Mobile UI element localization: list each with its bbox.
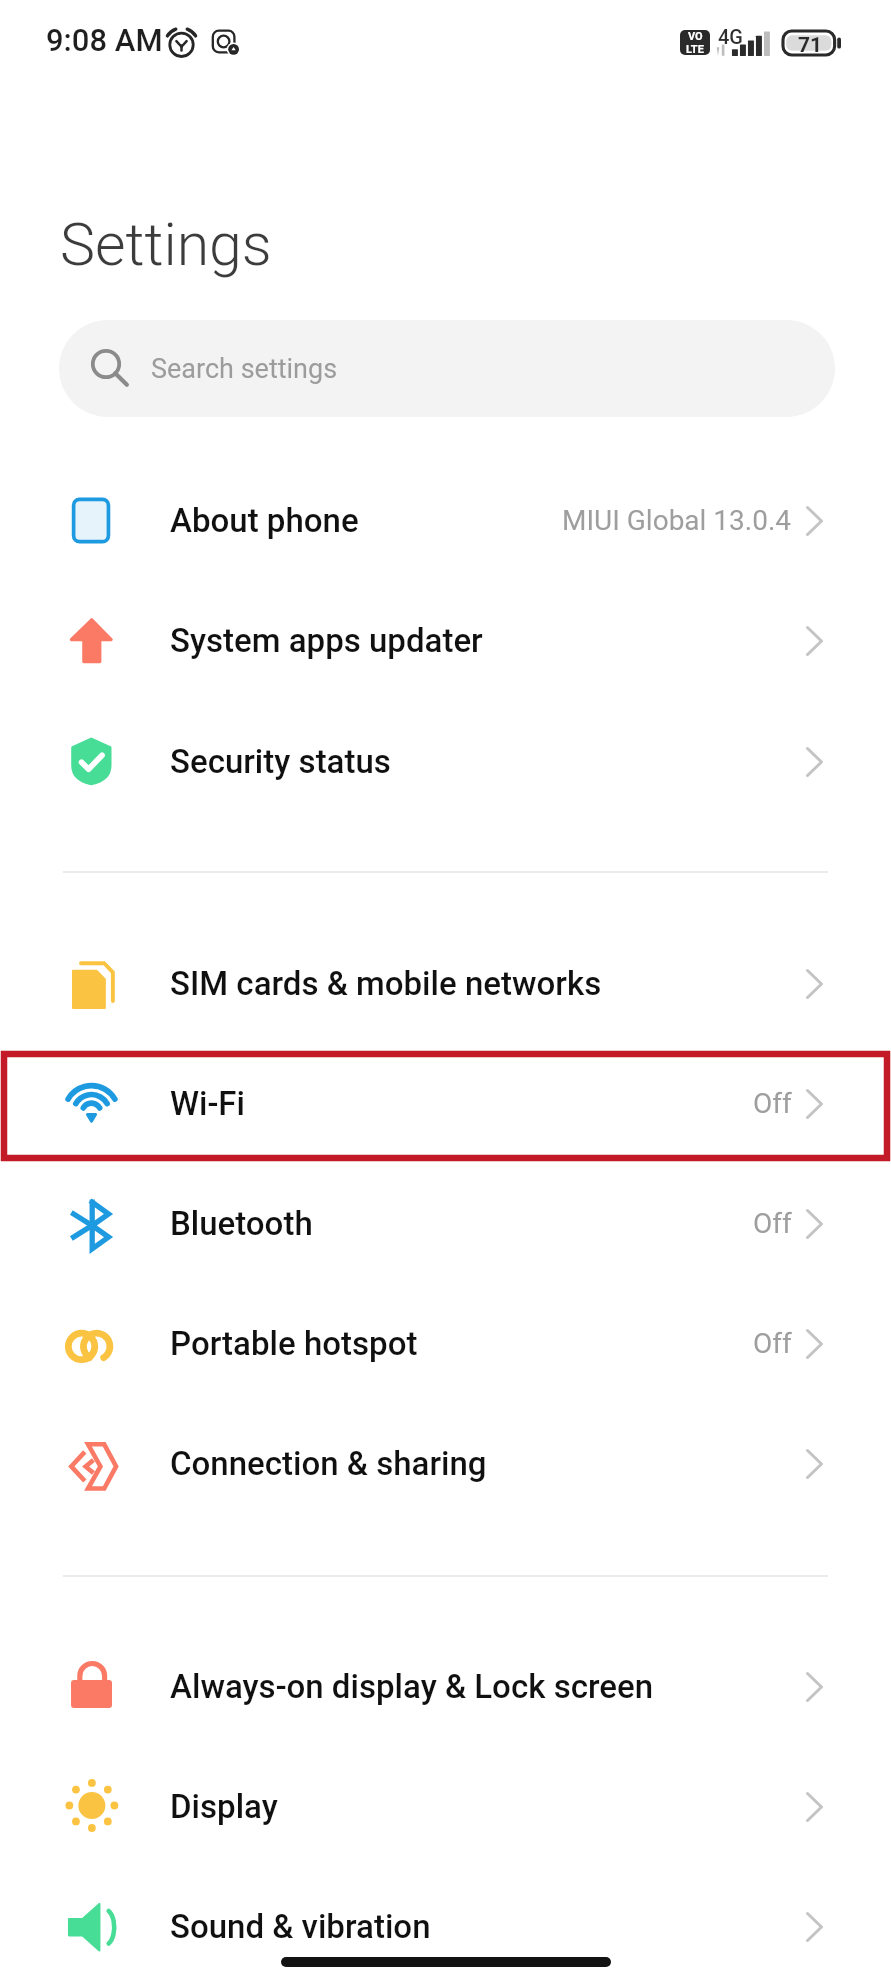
button[interactable]: SIM cards & mobile networks — [0, 924, 891, 1043]
button[interactable]: Connection & sharing — [0, 1404, 891, 1523]
staticText: Sound & vibration — [170, 1907, 431, 1946]
staticText: About phone — [170, 501, 359, 540]
staticText: Off — [753, 1327, 792, 1360]
button[interactable]: Always-on display & Lock screen — [0, 1627, 891, 1746]
staticText: Always-on display & Lock screen — [170, 1667, 654, 1706]
staticText: Search settings — [151, 353, 338, 385]
staticText: 71 — [798, 33, 823, 58]
button[interactable]: Bluetooth — [0, 1164, 891, 1283]
button[interactable]: Security status — [0, 702, 891, 821]
staticText: System apps updater — [170, 621, 483, 660]
button[interactable]: Search settings — [59, 320, 835, 417]
staticText: Portable hotspot — [170, 1324, 418, 1363]
staticText: LTE — [686, 43, 704, 55]
staticText: Connection & sharing — [170, 1444, 487, 1483]
staticText: Settings — [60, 210, 272, 279]
staticText: 9:08 AM — [46, 22, 163, 58]
staticText: 4G — [718, 25, 743, 48]
button[interactable]: Wi-Fi — [0, 1044, 891, 1163]
staticText: Display — [170, 1787, 278, 1826]
staticText: Wi-Fi — [170, 1084, 245, 1123]
staticText: MIUI Global 13.0.4 — [562, 504, 792, 537]
button[interactable]: Sound & vibration — [0, 1867, 891, 1980]
staticText: VO — [688, 30, 703, 43]
staticText: Bluetooth — [170, 1204, 313, 1243]
button[interactable]: About phone — [0, 461, 891, 580]
staticText: Off — [753, 1087, 792, 1120]
staticText: Off — [753, 1207, 792, 1240]
button[interactable]: System apps updater — [0, 581, 891, 700]
button[interactable]: Display — [0, 1747, 891, 1866]
button[interactable]: Portable hotspot — [0, 1284, 891, 1403]
staticText: Security status — [170, 742, 391, 781]
staticText: SIM cards & mobile networks — [170, 964, 602, 1003]
